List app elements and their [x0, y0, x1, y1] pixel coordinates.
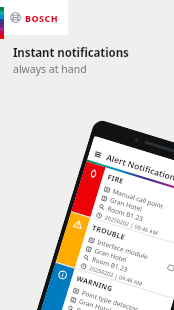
staticText: Room B1.23 [106, 204, 144, 223]
staticText: Gran Hotel [93, 246, 129, 264]
button[interactable]: WARNING [40, 263, 174, 310]
staticText: 20250202 | 09:46 AM [104, 213, 160, 236]
button[interactable]: Menu [92, 148, 103, 159]
staticText: BOSCH [25, 12, 58, 24]
staticText: TROUBLE [91, 223, 127, 243]
staticText: FIRE [106, 172, 125, 187]
staticText: Room B1.23 [75, 305, 113, 310]
staticText: always at hand [13, 62, 87, 76]
button[interactable]: TROUBLE [56, 212, 174, 298]
staticText: Room B1.23 [91, 255, 129, 274]
button[interactable]: Acknowledge [166, 263, 174, 273]
staticText: Instant notifications [13, 45, 129, 61]
other: Bosch logo [10, 12, 21, 23]
staticText: Manual call point [112, 187, 165, 211]
button[interactable]: FIRE [71, 161, 174, 247]
staticText: Gran Hotel [109, 195, 144, 214]
staticText: 20250202 | 09:46 AM [88, 264, 144, 287]
staticText: Alert Notifications [105, 151, 174, 185]
staticText: WARNING [75, 274, 114, 295]
staticText: Gran Hotel [78, 297, 113, 310]
button[interactable]: Bosch logo [0, 0, 68, 35]
button[interactable]: Menu [22, 118, 174, 310]
staticText: Interface module [96, 237, 149, 261]
staticText: Point type detector [81, 288, 140, 310]
